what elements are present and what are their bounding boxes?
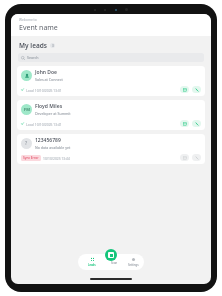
button[interactable]: Settings xyxy=(126,257,140,267)
staticText: Developer at Summit xyxy=(35,111,71,116)
staticText: Scan xyxy=(111,261,118,265)
staticText: Search xyxy=(27,55,39,60)
staticText: Settings xyxy=(128,263,139,267)
staticText: My leads xyxy=(19,41,48,50)
staticText: Sync Error xyxy=(23,156,39,160)
staticText: 123456789 xyxy=(35,137,61,144)
button[interactable]: Email xyxy=(180,86,189,93)
staticText: Local 10/10/2025 13:01 xyxy=(26,88,62,92)
button[interactable]: Call xyxy=(192,120,201,127)
staticText: FM xyxy=(24,107,30,112)
staticText: Floyd Miles xyxy=(35,103,63,110)
staticText: John Doe xyxy=(35,69,57,76)
button[interactable]: Scan xyxy=(104,254,124,270)
button[interactable]: Welcome to xyxy=(11,14,211,36)
button[interactable]: Scan xyxy=(105,249,117,261)
staticText: Leads xyxy=(88,263,96,267)
staticText: 3 xyxy=(52,44,54,48)
button[interactable]: John Doe xyxy=(17,66,205,96)
staticText: 10/10/2025 13:44 xyxy=(43,156,70,160)
button[interactable]: Email xyxy=(180,154,189,161)
staticText: Welcome to xyxy=(19,18,37,22)
button[interactable]: Call xyxy=(192,154,201,161)
staticText: No data available yet xyxy=(35,145,71,150)
staticText: Local 10/10/2025 13:41 xyxy=(26,122,62,126)
button[interactable]: Leads xyxy=(82,257,102,267)
staticText: Event name xyxy=(19,23,58,33)
button[interactable]: ? xyxy=(17,134,205,164)
button[interactable]: Search xyxy=(18,53,204,62)
staticText: Sales at Connect xyxy=(35,77,63,82)
button[interactable]: Email xyxy=(180,120,189,127)
staticText: ? xyxy=(25,140,28,147)
button[interactable]: FM xyxy=(17,100,205,130)
button[interactable]: Call xyxy=(192,86,201,93)
